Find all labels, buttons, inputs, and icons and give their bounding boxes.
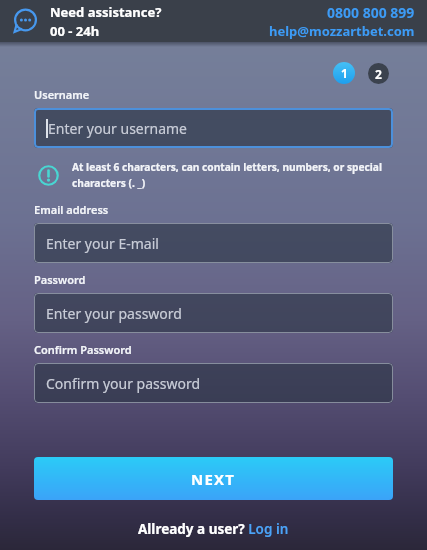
staticText: Enter your username [48, 119, 188, 138]
button[interactable]: help@mozzartbet.com [269, 22, 415, 40]
staticText: NEXT [191, 469, 236, 489]
staticText: Confirm your password [46, 374, 201, 393]
staticText: Password [34, 272, 86, 287]
staticText: Allready a user? Log in [138, 520, 289, 538]
button[interactable]: Enter your E-mail [34, 223, 393, 263]
staticText: 1 [341, 65, 348, 81]
button[interactable]: 2 [368, 63, 389, 84]
button[interactable]: Allready a user? Log in [34, 520, 393, 538]
button[interactable]: Enter your password [34, 293, 393, 333]
staticText: Username [34, 87, 90, 102]
button[interactable] [12, 8, 38, 34]
button[interactable]: 1 [333, 62, 355, 84]
staticText: Enter your E-mail [46, 234, 159, 253]
staticText: characters (. _) [72, 176, 146, 190]
button[interactable]: Confirm your password [34, 363, 393, 403]
staticText: 00 - 24h [50, 22, 100, 40]
button[interactable]: Enter your username [34, 108, 393, 148]
staticText: Email address [34, 202, 109, 217]
staticText: 2 [375, 66, 382, 82]
staticText: Confirm Password [34, 342, 132, 357]
button[interactable]: NEXT [34, 457, 393, 500]
button[interactable]: 0800 800 899 [327, 3, 415, 22]
staticText: Enter your password [46, 304, 182, 323]
staticText: At least 6 characters, can contain lette… [72, 160, 382, 174]
staticText: Need assistance? [50, 3, 162, 21]
